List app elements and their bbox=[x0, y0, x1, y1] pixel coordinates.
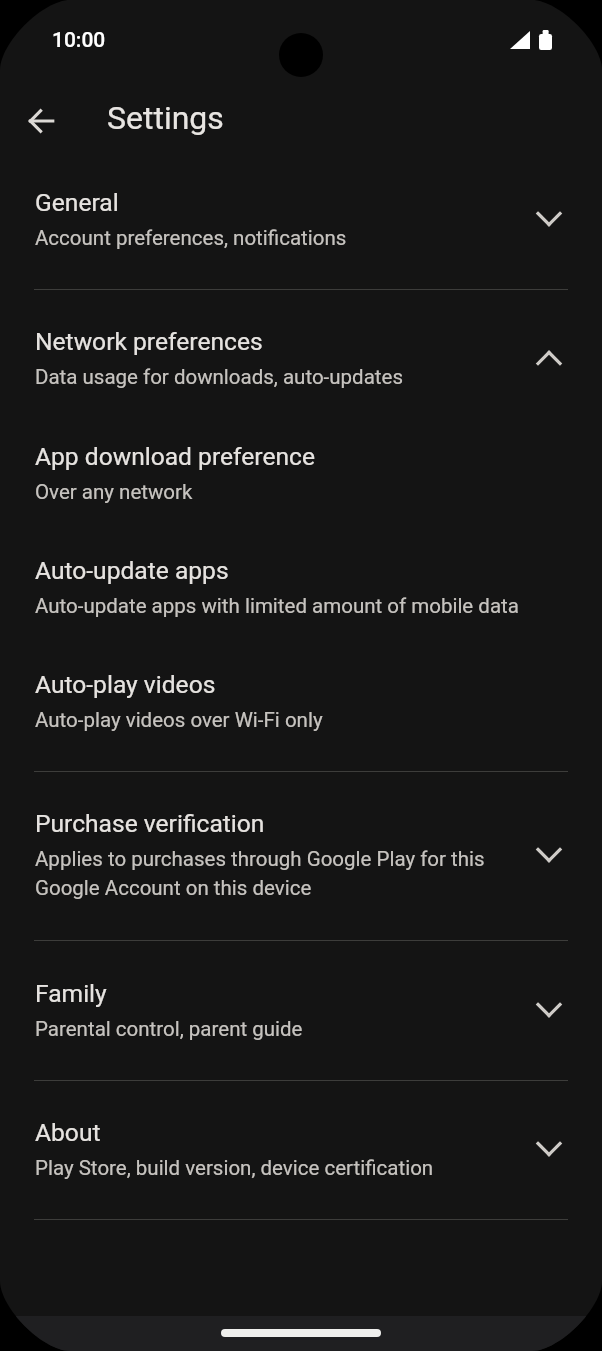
staticText: Auto-update apps bbox=[35, 556, 229, 585]
staticText: About bbox=[35, 1118, 101, 1147]
staticText: Family bbox=[35, 979, 107, 1008]
staticText: General bbox=[35, 188, 119, 217]
button[interactable]: Expand bbox=[521, 982, 577, 1038]
button[interactable]: General bbox=[0, 188, 602, 250]
button[interactable]: Back bbox=[19, 99, 63, 143]
staticText: Purchase verification bbox=[35, 809, 265, 838]
staticText: Auto-play videos bbox=[35, 670, 216, 699]
button[interactable]: Auto-play videos bbox=[0, 670, 602, 732]
button[interactable]: Expand bbox=[521, 827, 577, 883]
staticText: App download preference bbox=[35, 442, 315, 471]
staticText: Data usage for downloads, auto-updates bbox=[35, 365, 403, 389]
button[interactable]: Expand bbox=[521, 191, 577, 247]
staticText: Applies to purchases through Google Play… bbox=[35, 847, 522, 900]
button[interactable]: Collapse bbox=[521, 330, 577, 386]
button[interactable]: Expand bbox=[521, 1121, 577, 1177]
button[interactable]: Auto-update apps bbox=[0, 556, 602, 618]
staticText: Auto-update apps with limited amount of … bbox=[35, 594, 519, 618]
staticText: 10:00 bbox=[52, 28, 106, 53]
button[interactable]: Purchase verification bbox=[0, 809, 602, 900]
staticText: Auto-play videos over Wi-Fi only bbox=[35, 708, 323, 732]
button[interactable]: App download preference bbox=[0, 442, 602, 504]
staticText: Play Store, build version, device certif… bbox=[35, 1156, 434, 1180]
staticText: Parental control, parent guide bbox=[35, 1017, 303, 1041]
button[interactable]: About bbox=[0, 1118, 602, 1180]
staticText: Network preferences bbox=[35, 327, 263, 356]
button[interactable]: Family bbox=[0, 979, 602, 1041]
staticText: Account preferences, notifications bbox=[35, 226, 347, 250]
staticText: Settings bbox=[107, 99, 224, 137]
staticText: Over any network bbox=[35, 480, 193, 504]
button[interactable]: Network preferences bbox=[0, 327, 602, 389]
